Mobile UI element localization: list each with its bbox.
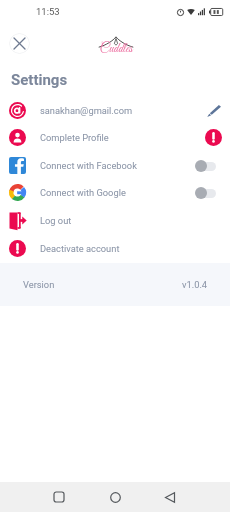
- staticText: Deactivate account: [40, 243, 120, 254]
- button[interactable]: Connect with Google: [0, 184, 230, 201]
- button[interactable]: Connect with Facebook: [0, 157, 230, 174]
- staticText: v1.0.4: [182, 279, 208, 290]
- staticText: Complete Profile: [40, 132, 109, 143]
- button[interactable]: Complete Profile: [0, 129, 230, 146]
- staticText: Version: [23, 279, 55, 290]
- button[interactable]: Log out: [0, 212, 230, 229]
- staticText: Connect with Google: [40, 187, 126, 198]
- button[interactable]: Close: [9, 33, 30, 54]
- button[interactable]: Back: [156, 482, 184, 512]
- staticText: sanakhan@gmail.com: [40, 105, 133, 116]
- staticText: Log out: [40, 215, 72, 226]
- button[interactable]: Edit email: [205, 103, 222, 119]
- button[interactable]: Recents: [45, 482, 73, 512]
- button[interactable]: Home: [101, 482, 129, 512]
- staticText: 11:53: [36, 6, 60, 17]
- button[interactable]: Toggle: [195, 185, 216, 201]
- staticText: Cuddles: [98, 41, 134, 57]
- button[interactable]: Toggle: [195, 158, 216, 174]
- button[interactable]: Profile incomplete: [205, 129, 222, 146]
- button[interactable]: sanakhan@gmail.com: [0, 102, 230, 119]
- button[interactable]: Deactivate account: [0, 240, 230, 257]
- staticText: Connect with Facebook: [40, 160, 137, 171]
- staticText: Settings: [11, 71, 68, 89]
